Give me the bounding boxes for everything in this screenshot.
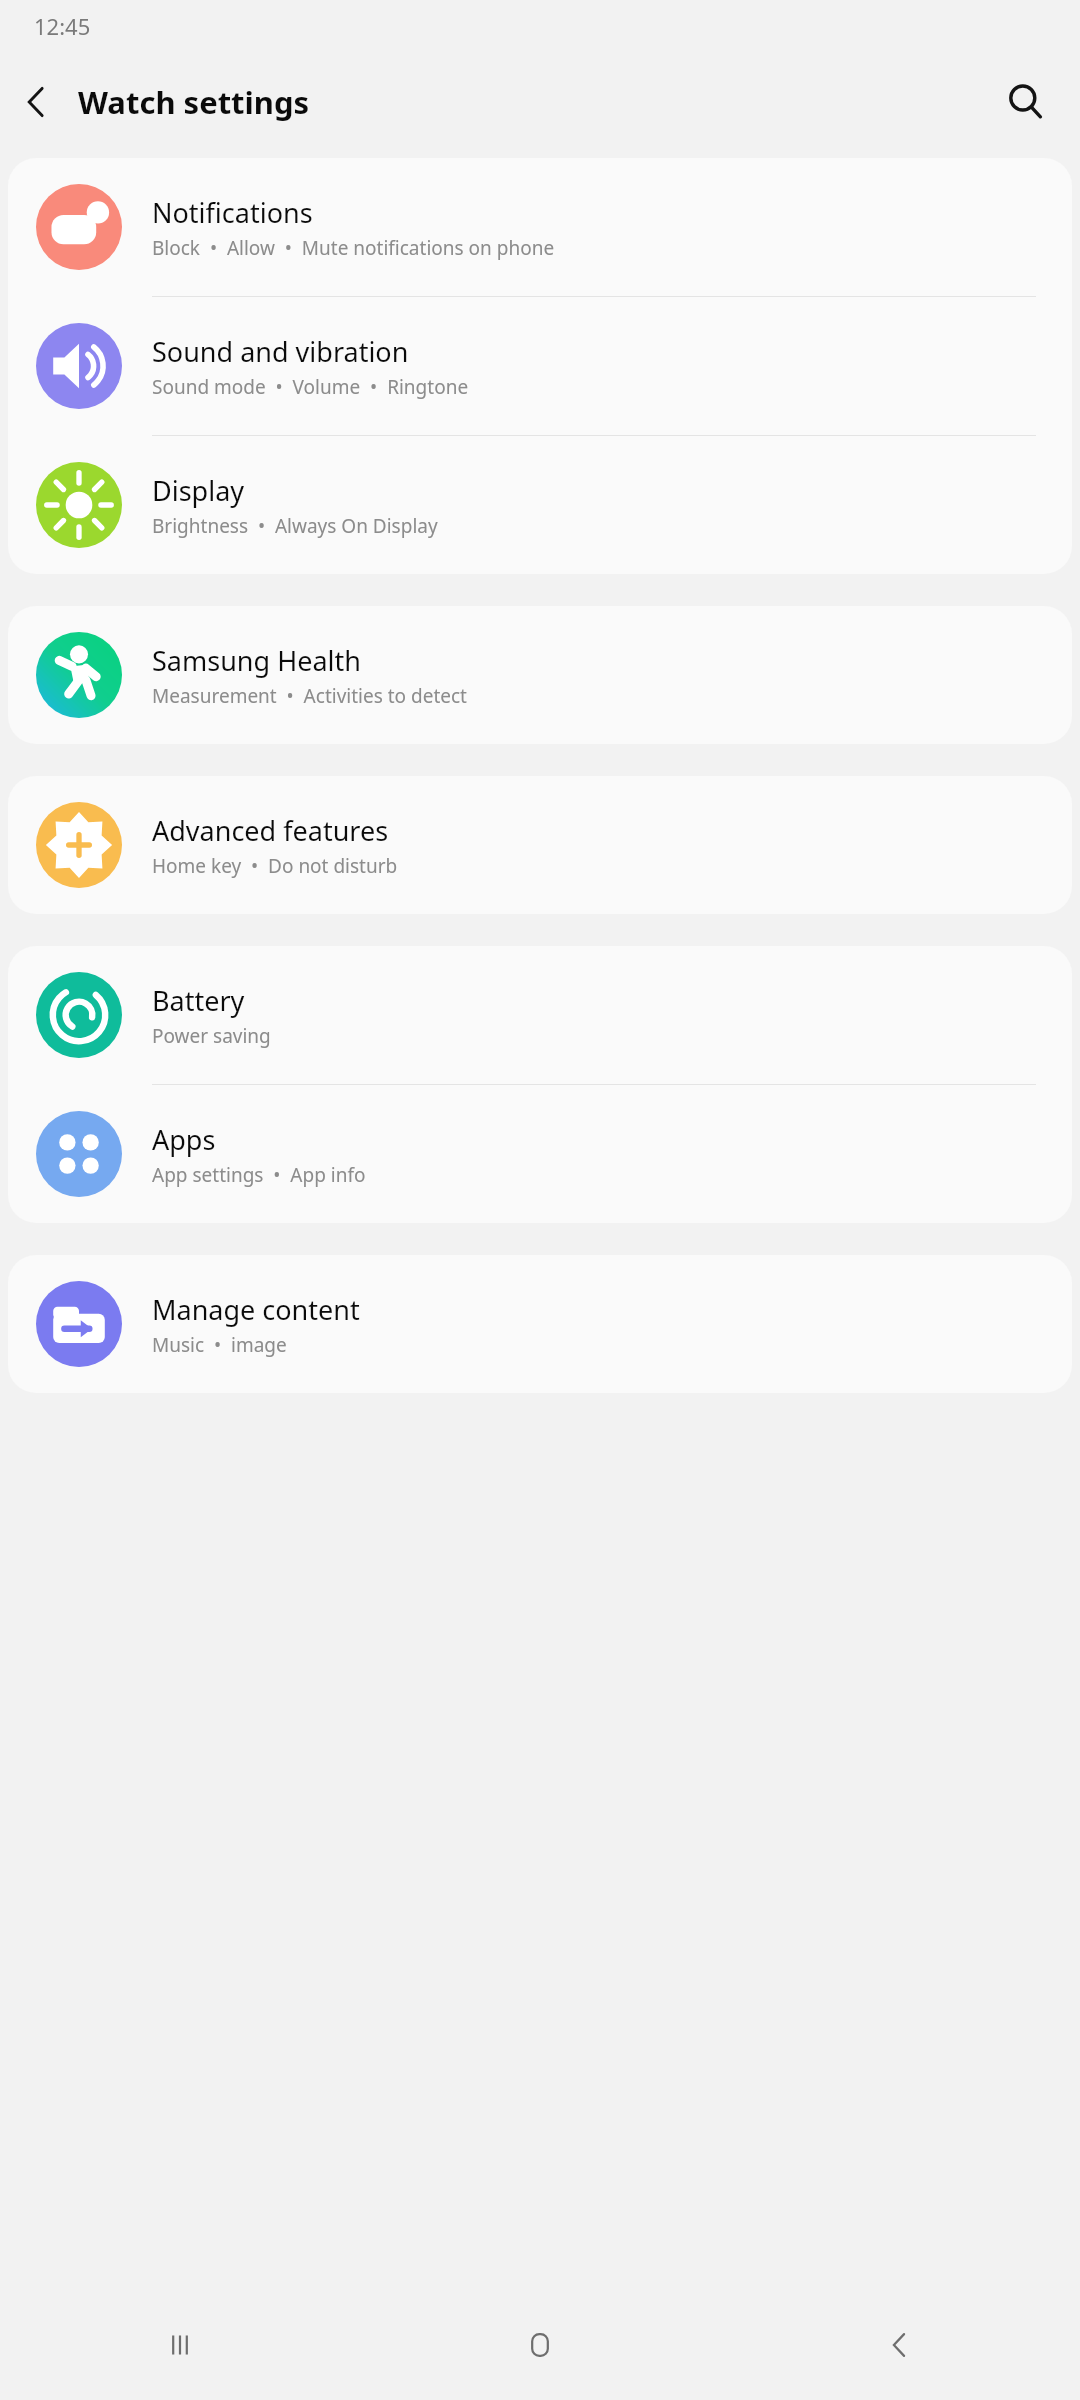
staticText: Samsung Health — [152, 642, 361, 679]
staticText: Battery — [152, 982, 245, 1019]
staticText: Sound mode • Volume • Ringtone — [152, 374, 469, 400]
staticText: Measurement • Activities to detect — [152, 683, 467, 709]
staticText: Manage content — [152, 1291, 360, 1328]
button[interactable]: Recent apps — [0, 2290, 360, 2400]
button[interactable]: Advanced features — [8, 776, 1072, 914]
button[interactable]: Home — [360, 2290, 720, 2400]
staticText: 12:45 — [34, 11, 91, 41]
staticText: Power saving — [152, 1023, 271, 1049]
staticText: Sound and vibration — [152, 333, 409, 370]
button[interactable]: Back — [0, 66, 72, 138]
staticText: Home key • Do not disturb — [152, 853, 398, 879]
button[interactable]: Search — [986, 62, 1066, 142]
button[interactable]: Display — [8, 436, 1072, 574]
staticText: Apps — [152, 1121, 216, 1158]
staticText: Advanced features — [152, 812, 389, 849]
button[interactable]: Notifications — [8, 158, 1072, 296]
staticText: Notifications — [152, 194, 313, 231]
staticText: Brightness • Always On Display — [152, 513, 438, 539]
button[interactable]: Samsung Health — [8, 606, 1072, 744]
staticText: Music • image — [152, 1332, 287, 1358]
button[interactable]: Manage content — [8, 1255, 1072, 1393]
button[interactable]: Battery — [8, 946, 1072, 1084]
staticText: Display — [152, 472, 245, 509]
staticText: Block • Allow • Mute notifications on ph… — [152, 235, 555, 261]
button[interactable]: Sound and vibration — [8, 297, 1072, 435]
staticText: App settings • App info — [152, 1162, 366, 1188]
button[interactable]: Back — [720, 2290, 1080, 2400]
staticText: Watch settings — [78, 81, 986, 123]
button[interactable]: Apps — [8, 1085, 1072, 1223]
